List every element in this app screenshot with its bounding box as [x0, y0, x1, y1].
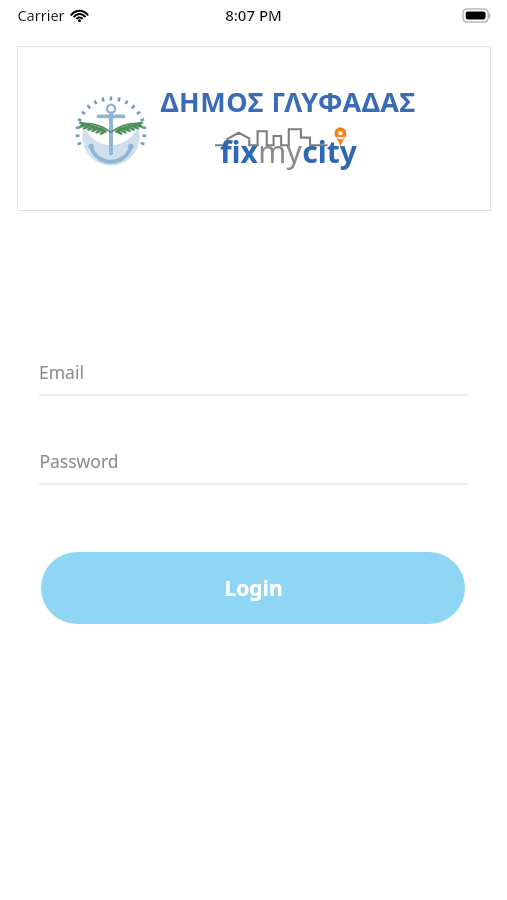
staticText: Carrier	[17, 5, 65, 25]
button[interactable]: Login	[41, 552, 465, 624]
staticText: my	[258, 131, 302, 172]
button[interactable]: Password	[39, 437, 468, 485]
button[interactable]: Email	[39, 348, 468, 396]
staticText: fix	[220, 131, 258, 172]
staticText: ΔΗΜΟΣ ΓΛΥΦΑΔΑΣ	[160, 83, 416, 120]
staticText: Email	[39, 360, 84, 384]
staticText: Login	[224, 574, 283, 603]
staticText: city	[302, 131, 357, 172]
staticText: 8:07 PM	[225, 5, 282, 25]
staticText: Password	[39, 449, 119, 473]
